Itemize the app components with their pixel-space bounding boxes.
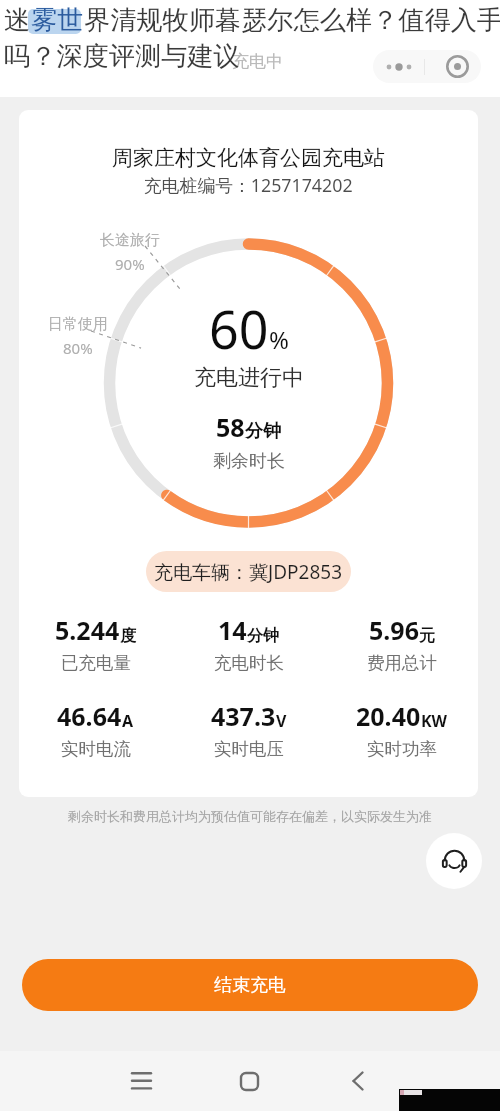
button[interactable]: Customer service xyxy=(426,833,482,889)
staticText: 已充电量 xyxy=(61,652,131,674)
button[interactable]: Close xyxy=(434,50,481,83)
staticText: % xyxy=(269,323,289,356)
button[interactable]: 充电车辆：冀JDP2853 xyxy=(146,551,351,592)
staticText: 界清规牧师暮瑟尔怎么样？值得入手 xyxy=(84,4,500,37)
staticText: 充电车辆：冀JDP2853 xyxy=(154,559,343,585)
staticText: 日常使用 xyxy=(48,315,108,334)
button[interactable]: Recents xyxy=(114,1051,169,1111)
staticText: 实时电流 xyxy=(61,738,131,760)
staticText: 剩余时长和费用总计均为预估值可能存在偏差，以实际发生为准 xyxy=(68,808,432,824)
staticText: 5.96 xyxy=(369,613,419,647)
button[interactable]: 结束充电 xyxy=(22,959,478,1011)
staticText: V xyxy=(276,710,287,732)
staticText: 80% xyxy=(63,338,93,358)
staticText: 90% xyxy=(115,254,145,274)
staticText: 20.40 xyxy=(356,699,421,733)
staticText: 长途旅行 xyxy=(100,231,160,250)
staticText: 充电进行中 xyxy=(194,364,304,392)
staticText: 度 xyxy=(120,626,136,646)
staticText: 迷 xyxy=(4,4,31,37)
button[interactable]: Back xyxy=(330,1051,385,1111)
staticText: 充电桩编号：1257174202 xyxy=(144,173,353,197)
staticText: 吗？深度评测与建议 xyxy=(4,40,240,73)
staticText: 费用总计 xyxy=(367,652,437,674)
staticText: KW xyxy=(421,710,448,732)
staticText: 实时电压 xyxy=(214,738,284,760)
staticText: 雾世 xyxy=(31,4,84,37)
staticText: 58 xyxy=(216,410,245,444)
staticText: A xyxy=(122,710,134,732)
staticText: 充电中 xyxy=(232,51,283,72)
staticText: 结束充电 xyxy=(214,974,286,997)
staticText: 14 xyxy=(218,613,247,647)
staticText: 实时功率 xyxy=(367,738,437,760)
staticText: 46.64 xyxy=(57,699,122,733)
staticText: 元 xyxy=(419,626,435,646)
button[interactable]: Home xyxy=(222,1051,277,1111)
staticText: 周家庄村文化体育公园充电站 xyxy=(112,145,385,171)
staticText: 5.244 xyxy=(55,613,120,647)
staticText: 分钟 xyxy=(247,626,279,646)
staticText: 剩余时长 xyxy=(213,450,285,473)
staticText: 60 xyxy=(209,293,269,364)
staticText: 分钟 xyxy=(245,420,281,443)
button[interactable]: More xyxy=(373,50,424,83)
staticText: 437.3 xyxy=(211,699,276,733)
staticText: 充电时长 xyxy=(214,652,284,674)
